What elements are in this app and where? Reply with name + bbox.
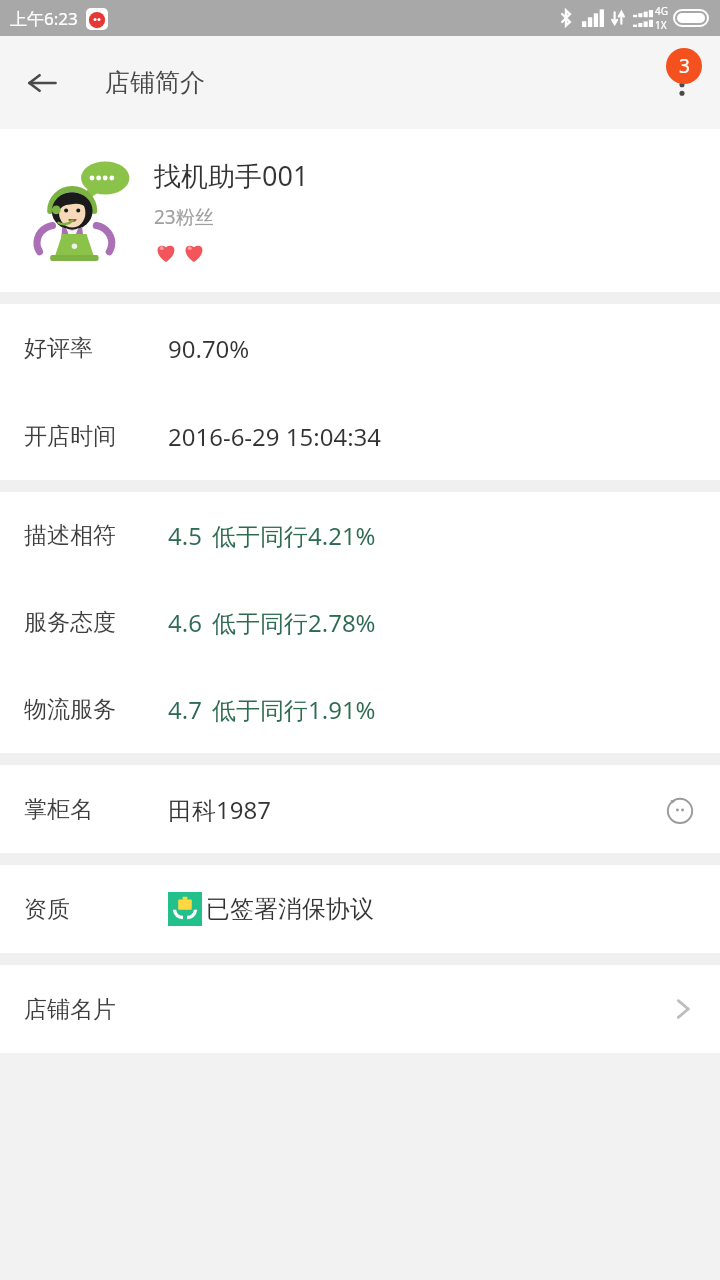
button[interactable]: 描述相符 bbox=[0, 492, 720, 579]
button[interactable]: More options bbox=[654, 55, 710, 111]
staticText: 物流服务 bbox=[24, 695, 116, 724]
staticText: 90.70% bbox=[168, 332, 250, 365]
button[interactable]: 开店时间 bbox=[0, 392, 720, 480]
staticText: 3 bbox=[679, 53, 690, 79]
staticText: 已签署消保协议 bbox=[206, 894, 374, 924]
staticText: 掌柜名 bbox=[24, 795, 93, 824]
staticText: 4.7 bbox=[168, 693, 202, 726]
button[interactable]: Back bbox=[14, 55, 70, 111]
staticText: 低于同行4.21% bbox=[212, 519, 376, 552]
button[interactable]: 好评率 bbox=[0, 304, 720, 392]
staticText: 好评率 bbox=[24, 334, 93, 363]
button[interactable]: Chat with seller bbox=[658, 787, 702, 831]
staticText: 低于同行1.91% bbox=[212, 693, 376, 726]
staticText: 4.6 bbox=[168, 606, 202, 639]
staticText: 服务态度 bbox=[24, 608, 116, 637]
staticText: 店铺名片 bbox=[24, 995, 116, 1024]
staticText: 低于同行2.78% bbox=[212, 606, 376, 639]
button[interactable]: 服务态度 bbox=[0, 579, 720, 666]
button[interactable]: 店铺名片 bbox=[0, 965, 720, 1053]
staticText: 上午6:23 bbox=[10, 7, 78, 30]
staticText: 4.5 bbox=[168, 519, 202, 552]
staticText: 4G bbox=[655, 4, 668, 18]
staticText: 店铺简介 bbox=[105, 67, 205, 98]
staticText: 2016-6-29 15:04:34 bbox=[168, 420, 382, 453]
button[interactable]: 资质 bbox=[0, 865, 720, 953]
staticText: 田科1987 bbox=[168, 793, 271, 826]
button[interactable]: 掌柜名 bbox=[0, 765, 720, 853]
button[interactable]: 找机助手001 bbox=[0, 129, 720, 292]
button[interactable]: 物流服务 bbox=[0, 666, 720, 753]
staticText: 23粉丝 bbox=[154, 204, 214, 230]
staticText: 资质 bbox=[24, 895, 70, 924]
staticText: 1X bbox=[655, 18, 667, 32]
staticText: 描述相符 bbox=[24, 521, 116, 550]
staticText: 找机助手001 bbox=[154, 157, 309, 194]
staticText: 开店时间 bbox=[24, 422, 116, 451]
